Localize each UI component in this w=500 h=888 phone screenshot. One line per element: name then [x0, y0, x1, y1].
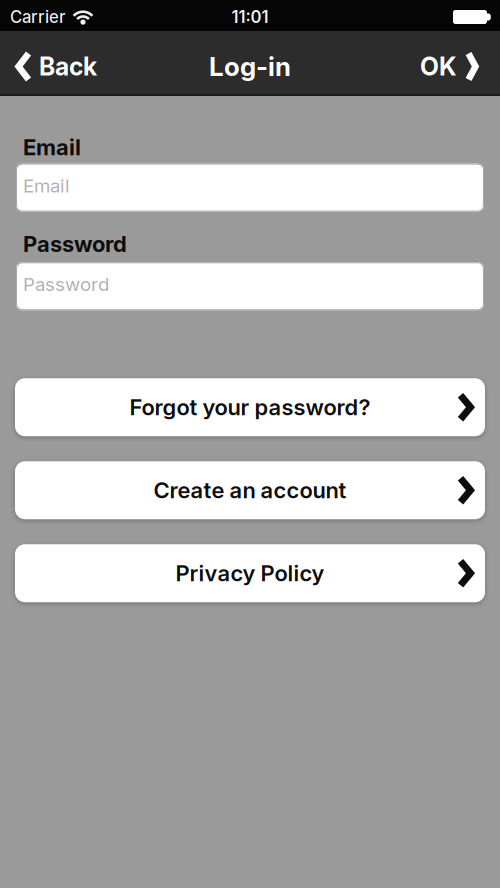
button[interactable]: Forgot your password? [0, 378, 500, 436]
staticText: Back [39, 52, 97, 81]
button[interactable]: Back [0, 50, 97, 83]
staticText: Carrier [10, 7, 65, 27]
button[interactable]: Privacy Policy [0, 544, 500, 602]
staticText: Password [23, 231, 127, 257]
staticText: 11:01 [231, 7, 268, 27]
button[interactable]: OK [420, 50, 500, 83]
button[interactable]: Email [0, 164, 500, 212]
staticText: Forgot your password? [129, 394, 370, 420]
staticText: Log-in [209, 51, 291, 82]
staticText: Create an account [153, 477, 346, 503]
staticText: Email [23, 134, 81, 161]
staticText: Email [23, 174, 70, 197]
staticText: Password [23, 273, 109, 295]
staticText: OK [420, 52, 457, 81]
button[interactable]: Create an account [0, 461, 500, 519]
staticText: Privacy Policy [175, 560, 324, 586]
button[interactable]: Password [0, 262, 500, 310]
